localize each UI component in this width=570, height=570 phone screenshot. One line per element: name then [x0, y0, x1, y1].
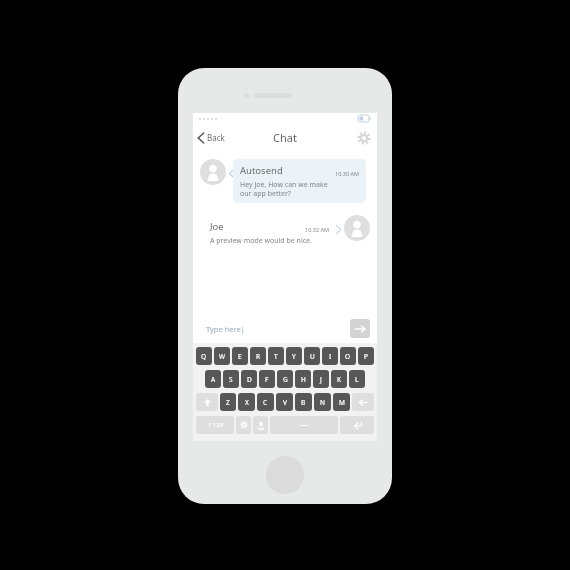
- button[interactable]: U: [304, 347, 320, 365]
- button[interactable]: J: [313, 370, 329, 388]
- button[interactable]: W: [214, 347, 230, 365]
- button[interactable]: A: [205, 370, 221, 388]
- button[interactable]: N: [314, 393, 331, 411]
- staticText: .? 123: [207, 421, 224, 429]
- button[interactable]: Back: [198, 132, 225, 143]
- button[interactable]: Send: [350, 319, 370, 338]
- staticText: Y: [292, 352, 296, 361]
- button[interactable]: R: [250, 347, 266, 365]
- button[interactable]: Backspace: [352, 393, 374, 411]
- button[interactable]: B: [295, 393, 312, 411]
- button[interactable]: Y: [286, 347, 302, 365]
- button[interactable]: E: [232, 347, 248, 365]
- staticText: R: [256, 352, 261, 361]
- staticText: T: [274, 352, 278, 361]
- button[interactable]: Settings: [356, 130, 372, 146]
- staticText: X: [245, 398, 249, 407]
- staticText: J: [320, 375, 322, 384]
- staticText: Type here|: [206, 324, 245, 334]
- staticText: M: [339, 398, 345, 407]
- button[interactable]: Keyboard settings: [236, 416, 251, 434]
- staticText: G: [283, 375, 288, 384]
- staticText: E: [238, 352, 242, 361]
- button[interactable]: Joe: [210, 220, 329, 246]
- staticText: A preview mode would be nice.: [210, 236, 312, 246]
- staticText: H: [301, 375, 306, 384]
- button[interactable]: C: [257, 393, 274, 411]
- button[interactable]: M: [333, 393, 350, 411]
- button[interactable]: V: [276, 393, 293, 411]
- staticText: C: [263, 398, 268, 407]
- staticText: Q: [201, 352, 207, 361]
- button[interactable]: Q: [196, 347, 212, 365]
- button[interactable]: S: [223, 370, 239, 388]
- staticText: V: [283, 398, 287, 407]
- button[interactable]: Autosend: [240, 164, 359, 198]
- button[interactable]: I: [322, 347, 338, 365]
- button[interactable]: .? 123: [196, 416, 234, 434]
- staticText: Hey Joe, How can we make our app better?: [240, 180, 328, 198]
- staticText: L: [355, 375, 359, 384]
- staticText: S: [229, 375, 233, 384]
- staticText: K: [337, 375, 342, 384]
- staticText: Joe: [210, 220, 224, 233]
- staticText: D: [247, 375, 252, 384]
- button[interactable]: P: [358, 347, 374, 365]
- button[interactable]: Shift: [196, 393, 218, 411]
- button[interactable]: O: [340, 347, 356, 365]
- staticText: Back: [207, 132, 225, 143]
- button[interactable]: Type here|: [206, 319, 345, 338]
- staticText: I: [329, 352, 332, 361]
- staticText: 10.30 AM: [335, 170, 359, 177]
- button[interactable]: H: [295, 370, 311, 388]
- staticText: F: [265, 375, 269, 384]
- button[interactable]: Voice input: [253, 416, 268, 434]
- staticText: O: [345, 352, 351, 361]
- staticText: W: [219, 352, 226, 361]
- staticText: 10.32 AM: [305, 226, 329, 233]
- button[interactable]: K: [331, 370, 347, 388]
- button[interactable]: X: [238, 393, 255, 411]
- staticText: Chat: [273, 130, 297, 145]
- staticText: Z: [226, 398, 230, 407]
- staticText: P: [364, 352, 368, 361]
- button[interactable]: D: [241, 370, 257, 388]
- staticText: N: [320, 398, 325, 407]
- button[interactable]: Home: [266, 456, 304, 494]
- button[interactable]: L: [349, 370, 365, 388]
- button[interactable]: G: [277, 370, 293, 388]
- button[interactable]: T: [268, 347, 284, 365]
- button[interactable]: Z: [220, 393, 236, 411]
- staticText: B: [301, 398, 306, 407]
- staticText: Autosend: [240, 164, 283, 177]
- staticText: U: [310, 352, 315, 361]
- button[interactable]: F: [259, 370, 275, 388]
- button[interactable]: Enter: [340, 416, 374, 434]
- staticText: A: [211, 375, 216, 384]
